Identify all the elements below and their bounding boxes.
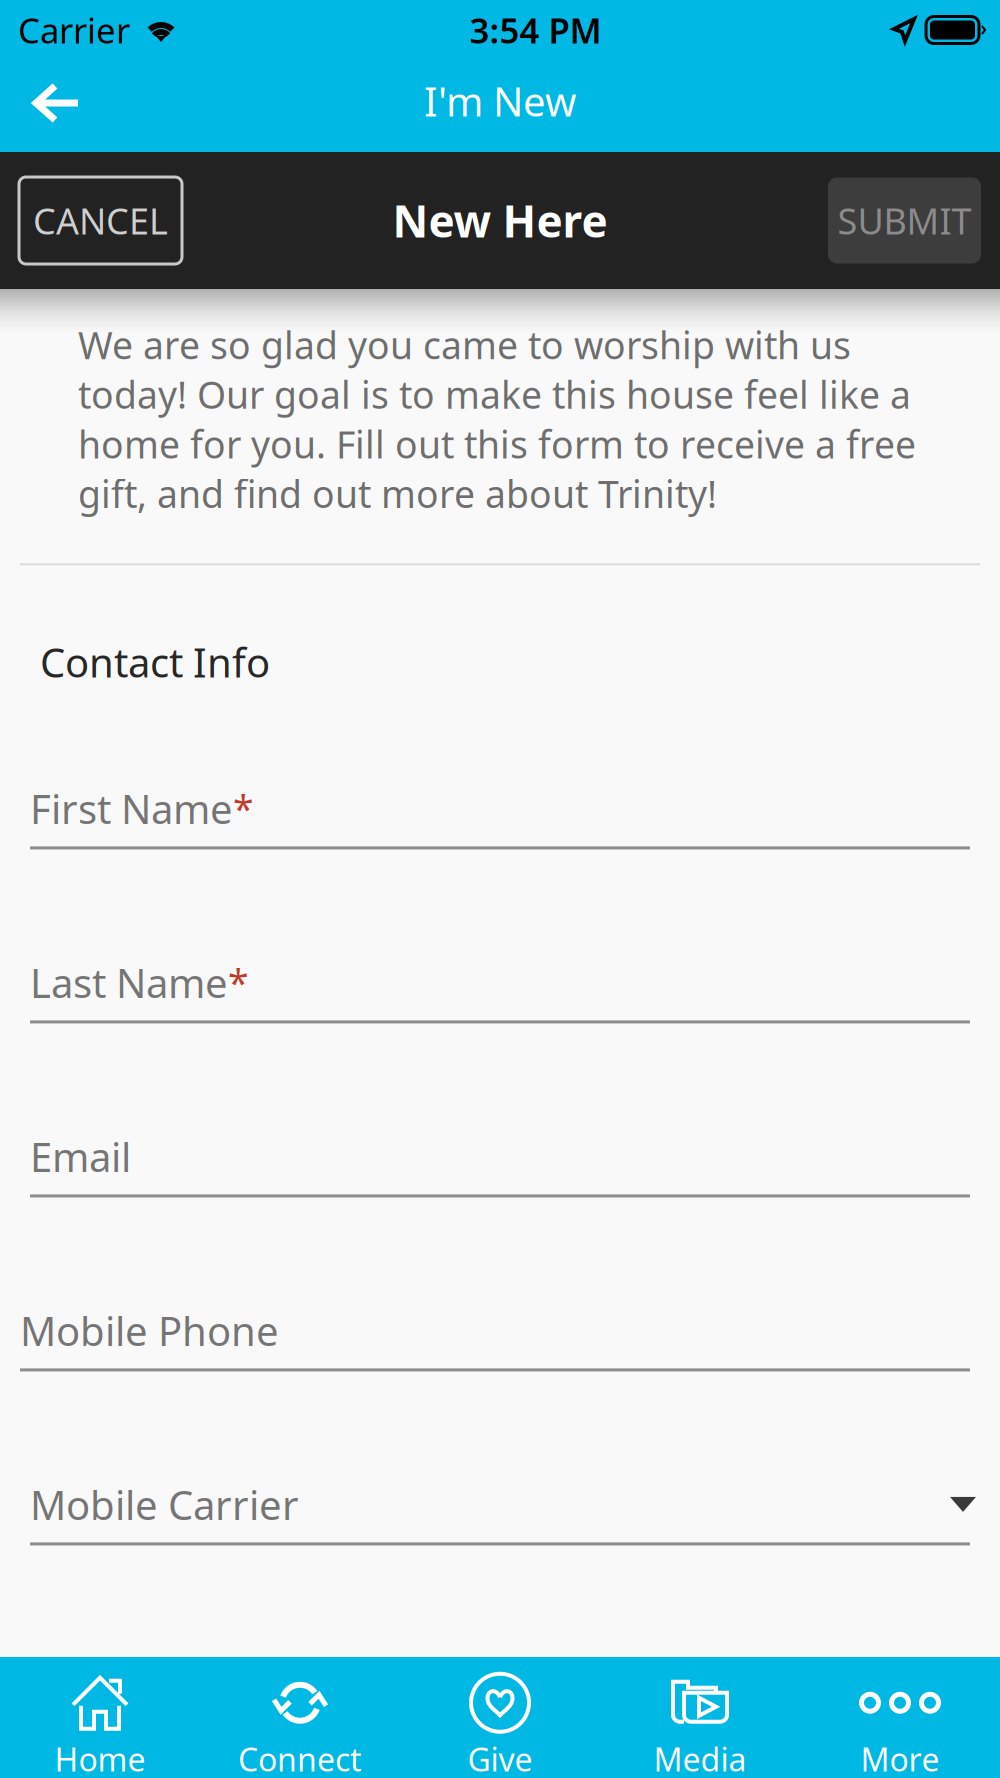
staticText: Give (467, 1738, 532, 1778)
button[interactable]: Home (0, 1657, 200, 1778)
button[interactable]: Give (400, 1657, 600, 1778)
staticText: Mobile Carrier (30, 1478, 299, 1531)
staticText: We are so glad you came to worship with … (78, 320, 916, 518)
staticText: I'm New (424, 74, 576, 127)
staticText: * (228, 958, 249, 1007)
staticText: More (860, 1738, 939, 1778)
button[interactable]: Last Name (0, 960, 1000, 1023)
staticText: CANCEL (33, 197, 168, 244)
button[interactable]: CANCEL (19, 177, 182, 264)
button[interactable]: Media (600, 1657, 800, 1778)
button[interactable]: SUBMIT (828, 177, 981, 263)
button[interactable]: Email (0, 1134, 1000, 1197)
staticText: SUBMIT (837, 197, 971, 244)
button[interactable]: Connect (200, 1657, 400, 1778)
staticText: Carrier (18, 7, 130, 53)
staticText: New Here (392, 191, 607, 250)
button[interactable]: Mobile Phone (0, 1308, 1000, 1371)
button[interactable]: More (800, 1657, 1000, 1778)
staticText: * (233, 784, 254, 833)
button[interactable]: Mobile Carrier (0, 1482, 1000, 1545)
staticText: Contact Info (40, 635, 270, 688)
staticText: 3:54 PM (469, 7, 601, 53)
button[interactable]: Back (0, 60, 108, 152)
staticText: First Name (30, 782, 233, 835)
staticText: Email (30, 1130, 131, 1183)
staticText: Last Name (30, 956, 228, 1009)
staticText: Mobile Phone (20, 1304, 279, 1357)
staticText: Connect (238, 1738, 362, 1778)
staticText: Media (653, 1738, 746, 1778)
staticText: Home (54, 1738, 145, 1778)
button[interactable]: First Name (0, 786, 1000, 849)
